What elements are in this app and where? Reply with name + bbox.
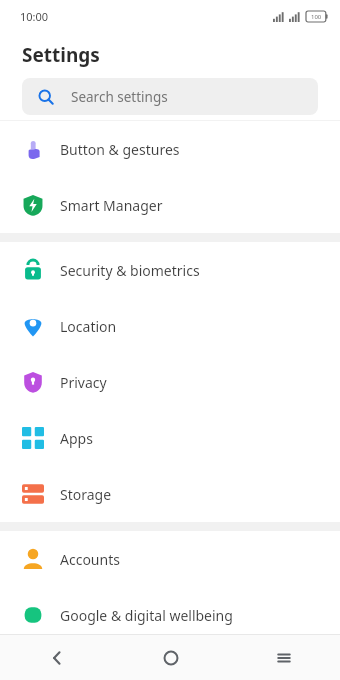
button[interactable]: Google & digital wellbeing: [0, 587, 340, 643]
button[interactable]: Recents: [227, 635, 340, 680]
staticText: Settings: [22, 42, 100, 68]
button[interactable]: Smart Manager: [0, 177, 340, 233]
staticText: 100: [311, 13, 322, 21]
staticText: 10:00: [20, 9, 49, 24]
button[interactable]: Search settings: [22, 78, 318, 115]
button[interactable]: Security & biometrics: [0, 242, 340, 298]
staticText: Google & digital wellbeing: [60, 606, 233, 625]
button[interactable]: Storage: [0, 466, 340, 522]
staticText: Button & gestures: [60, 140, 180, 159]
button[interactable]: Back: [0, 635, 114, 680]
staticText: Search settings: [71, 88, 168, 106]
button[interactable]: Location: [0, 298, 340, 354]
button[interactable]: Button & gestures: [0, 121, 340, 177]
staticText: Apps: [60, 429, 93, 448]
button[interactable]: Home: [114, 635, 227, 680]
staticText: Storage: [60, 485, 112, 504]
staticText: Privacy: [60, 373, 107, 392]
staticText: Accounts: [60, 550, 120, 569]
button[interactable]: Accounts: [0, 531, 340, 587]
button[interactable]: Apps: [0, 410, 340, 466]
staticText: Smart Manager: [60, 196, 163, 215]
staticText: Location: [60, 317, 117, 336]
button[interactable]: Privacy: [0, 354, 340, 410]
staticText: Security & biometrics: [60, 261, 200, 280]
